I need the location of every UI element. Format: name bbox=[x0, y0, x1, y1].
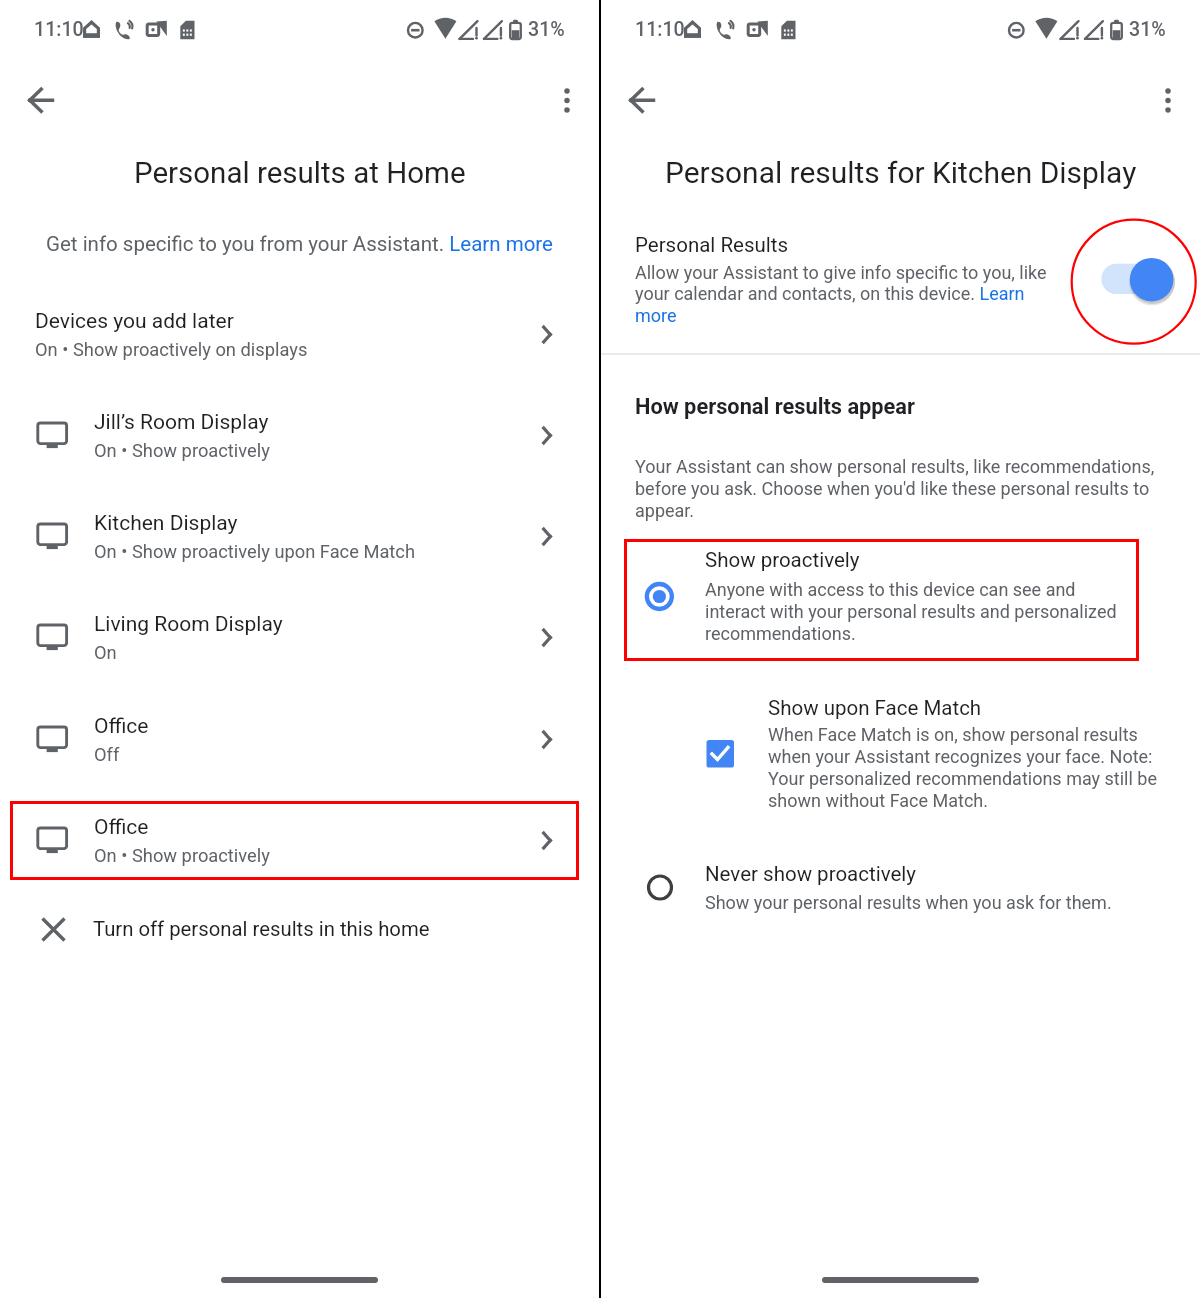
staticText: 11:10 bbox=[34, 18, 84, 41]
button[interactable]: Navigate up bbox=[618, 76, 666, 124]
button[interactable]: More options bbox=[543, 76, 591, 124]
staticText: Living Room Display bbox=[94, 612, 283, 637]
staticText: 31% bbox=[528, 18, 565, 41]
button[interactable]: Personal Results bbox=[601, 222, 1200, 346]
staticText: Get info specific to you from your Assis… bbox=[46, 232, 553, 256]
button[interactable]: Personal Results toggle bbox=[1067, 215, 1200, 349]
staticText: On • Show proactively bbox=[94, 440, 270, 461]
staticText: 31% bbox=[1129, 18, 1166, 41]
staticText: Kitchen Display bbox=[94, 511, 238, 536]
button[interactable]: Turn off personal results in this home bbox=[0, 897, 599, 963]
button[interactable]: Living Room Display bbox=[0, 592, 599, 676]
staticText: Show your personal results when you ask … bbox=[705, 892, 1112, 913]
staticText: Allow your Assistant to give info specif… bbox=[635, 262, 1055, 327]
staticText: Turn off personal results in this home bbox=[93, 917, 430, 941]
button[interactable]: Jill’s Room Display bbox=[0, 390, 599, 474]
staticText: On • Show proactively on displays bbox=[35, 339, 308, 360]
button[interactable]: Show upon Face Match bbox=[624, 686, 1139, 816]
staticText: Your Assistant can show personal results… bbox=[635, 456, 1165, 521]
staticText: On bbox=[94, 642, 117, 663]
button[interactable]: Show proactively bbox=[624, 539, 1139, 661]
staticText: Jill’s Room Display bbox=[94, 410, 269, 435]
staticText: Never show proactively bbox=[705, 862, 916, 886]
staticText: Devices you add later bbox=[35, 309, 234, 334]
button[interactable]: Never show proactively bbox=[624, 855, 1139, 935]
staticText: When Face Match is on, show personal res… bbox=[768, 724, 1183, 811]
staticText: How personal results appear bbox=[635, 394, 916, 420]
button[interactable]: Office bbox=[0, 694, 599, 778]
button[interactable]: Office bbox=[0, 795, 599, 879]
staticText: On • Show proactively upon Face Match bbox=[94, 541, 415, 562]
staticText: Show proactively bbox=[705, 548, 860, 572]
button[interactable]: Devices you add later bbox=[0, 289, 599, 373]
staticText: 11:10 bbox=[635, 18, 685, 41]
button[interactable]: Kitchen Display bbox=[0, 491, 599, 575]
staticText: Personal results at Home bbox=[134, 156, 466, 191]
button[interactable]: Navigate up bbox=[17, 76, 65, 124]
staticText: On • Show proactively bbox=[94, 845, 270, 866]
staticText: Personal Results bbox=[635, 233, 789, 257]
staticText: Office bbox=[94, 815, 149, 840]
staticText: Show upon Face Match bbox=[768, 696, 982, 720]
staticText: Personal results for Kitchen Display bbox=[665, 155, 1137, 190]
staticText: Off bbox=[94, 744, 120, 765]
staticText: Anyone with access to this device can se… bbox=[705, 579, 1130, 644]
button[interactable]: More options bbox=[1144, 76, 1192, 124]
staticText: Office bbox=[94, 714, 149, 739]
